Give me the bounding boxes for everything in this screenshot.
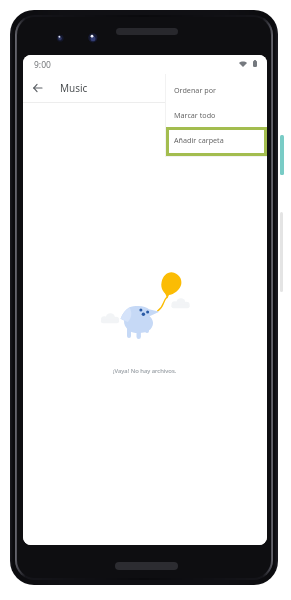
button[interactable]: Power button (280, 135, 284, 175)
button[interactable]: Marcar todo (166, 102, 267, 127)
button[interactable]: Back (28, 79, 46, 97)
staticText: Añadir carpeta (174, 135, 224, 145)
staticText: Marcar todo (174, 110, 216, 120)
staticText: Music (60, 81, 88, 95)
staticText: 9:00 (34, 59, 51, 71)
button[interactable]: Ordenar por (166, 77, 267, 102)
button[interactable]: Añadir carpeta (166, 127, 267, 152)
staticText: ¡Vaya! No hay archivos. (113, 367, 177, 375)
staticText: Ordenar por (174, 85, 216, 95)
